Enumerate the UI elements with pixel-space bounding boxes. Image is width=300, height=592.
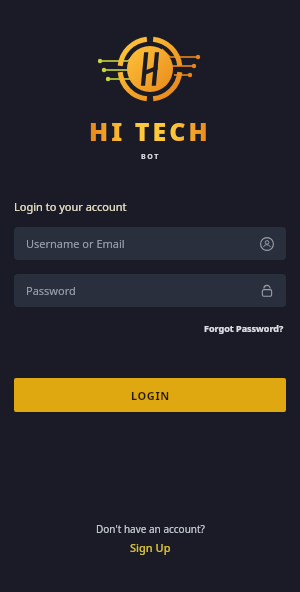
staticText: Login to your account [14, 199, 127, 214]
staticText: Don't have an account? [96, 522, 205, 536]
staticText: BOT [141, 152, 160, 162]
staticText: HI TECH [89, 114, 211, 148]
staticText: Username or Email [26, 236, 260, 251]
staticText: Sign Up [130, 540, 171, 555]
button[interactable]: Forgot Password? [202, 320, 286, 336]
button[interactable]: Sign Up [126, 539, 175, 556]
staticText: Password [26, 283, 260, 298]
staticText: LOGIN [131, 388, 170, 403]
button[interactable]: LOGIN [14, 378, 286, 412]
button[interactable]: Username or Email [14, 227, 286, 260]
button[interactable]: Password [14, 274, 286, 307]
staticText: Forgot Password? [204, 322, 284, 334]
